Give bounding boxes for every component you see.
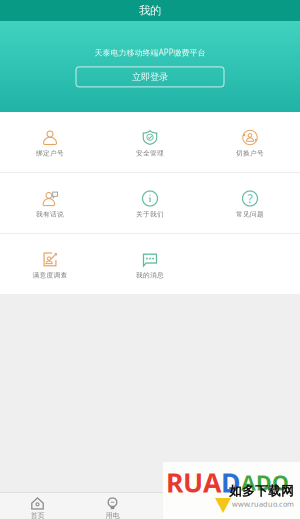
button[interactable]: 绑定户号 xyxy=(0,112,100,172)
staticText: 我的 xyxy=(139,3,161,18)
staticText: 绑定户号 xyxy=(36,149,64,157)
button[interactable]: 我的消息 xyxy=(100,234,200,294)
button[interactable]: 用电 xyxy=(75,492,150,519)
staticText: D xyxy=(221,464,241,500)
button[interactable]: 关于我们 xyxy=(100,173,200,233)
button[interactable]: 立即登录 xyxy=(0,67,300,87)
staticText: 关于我们 xyxy=(136,210,164,218)
staticText: O xyxy=(272,468,289,497)
button[interactable]: ? xyxy=(200,173,300,233)
staticText: ? xyxy=(247,190,252,206)
staticText: 立即登录 xyxy=(132,71,168,83)
button[interactable]: 切换户号 xyxy=(200,112,300,172)
staticText: 安全管理 xyxy=(136,149,164,157)
button[interactable]: 满意度调查 xyxy=(0,234,100,294)
button[interactable]: ¥ xyxy=(150,492,225,519)
button[interactable]: 安全管理 xyxy=(100,112,200,172)
staticText: 天泰电力移动终端APP缴费平台 xyxy=(94,47,205,58)
staticText: RUA xyxy=(166,464,221,500)
staticText: 用电 xyxy=(105,511,119,519)
staticText: D xyxy=(256,468,272,497)
staticText: www.ruaduo.com xyxy=(232,499,294,509)
staticText: 常见问题 xyxy=(236,210,264,218)
staticText: 满意度调查 xyxy=(32,271,67,279)
staticText: 我有话说 xyxy=(36,210,64,218)
staticText: 我的消息 xyxy=(136,271,164,279)
staticText: 切换户号 xyxy=(236,149,264,157)
staticText: A xyxy=(241,468,256,497)
button[interactable]: 首页 xyxy=(0,492,75,519)
button[interactable]: 我的 xyxy=(225,492,300,519)
button[interactable]: 我有话说 xyxy=(0,173,100,233)
staticText: 如多下载网 xyxy=(229,483,294,499)
staticText: 首页 xyxy=(30,511,44,519)
